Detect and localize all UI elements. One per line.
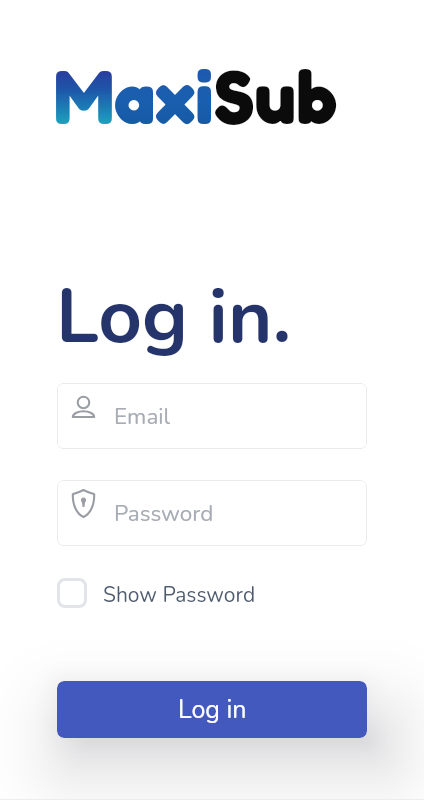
button[interactable]: User <box>57 383 367 449</box>
staticText: Password <box>114 498 214 529</box>
staticText: Sub <box>214 51 338 141</box>
staticText: Log in. <box>56 265 292 369</box>
button[interactable]: Password <box>57 480 367 546</box>
other: Password <box>68 486 99 521</box>
staticText: Log in <box>178 693 247 727</box>
staticText: Show Password <box>103 581 256 610</box>
staticText: M <box>54 51 114 141</box>
other: Show password checkbox <box>57 578 87 608</box>
staticText: axi <box>114 51 214 141</box>
button[interactable]: Show password checkbox <box>57 578 253 608</box>
button[interactable]: Log in <box>57 681 367 738</box>
staticText: Email <box>114 401 171 432</box>
other: User <box>68 393 99 423</box>
